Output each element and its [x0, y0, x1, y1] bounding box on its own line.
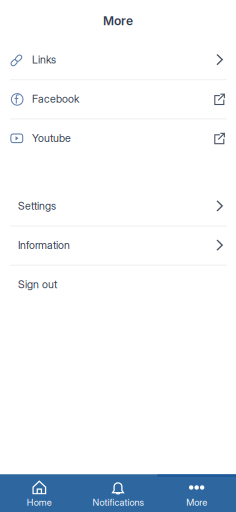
staticText: Notifications: [92, 497, 143, 508]
staticText: Sign out: [18, 278, 57, 291]
button[interactable]: Notifications: [79, 474, 157, 512]
staticText: Home: [27, 497, 52, 508]
staticText: Settings: [18, 199, 56, 212]
button[interactable]: Facebook: [0, 79, 236, 118]
button[interactable]: Sign out: [0, 265, 236, 304]
staticText: Links: [32, 53, 56, 66]
staticText: Youtube: [32, 131, 71, 144]
button[interactable]: More: [157, 474, 236, 512]
staticText: More: [186, 497, 207, 508]
button[interactable]: Links: [0, 40, 236, 79]
button[interactable]: Home: [0, 474, 79, 512]
staticText: More: [103, 14, 133, 28]
staticText: Facebook: [32, 92, 79, 105]
button[interactable]: Information: [0, 225, 236, 265]
button[interactable]: Youtube: [0, 118, 236, 158]
button[interactable]: Settings: [0, 186, 236, 225]
staticText: Information: [18, 239, 70, 251]
